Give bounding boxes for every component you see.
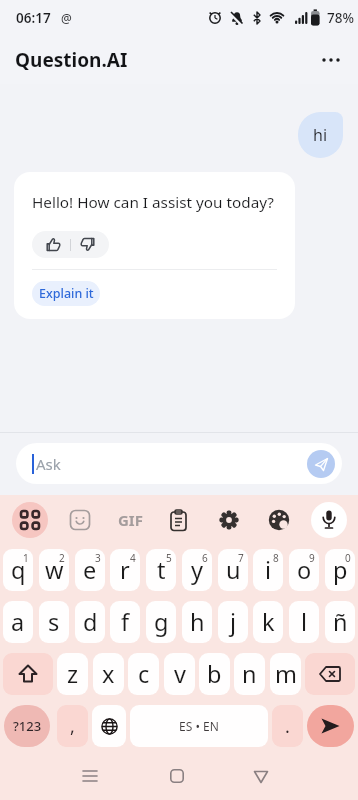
staticText: n	[242, 658, 257, 690]
staticText: Ask	[36, 454, 61, 474]
button[interactable]: q	[3, 549, 33, 591]
staticText: r	[120, 554, 130, 586]
button[interactable]: ?123	[4, 705, 50, 747]
staticText: b	[207, 658, 222, 690]
button[interactable]: c	[128, 653, 159, 695]
button[interactable]: ,	[57, 705, 88, 747]
staticText: i	[265, 554, 272, 586]
staticText: k	[262, 606, 275, 638]
button[interactable]: n	[234, 653, 265, 695]
button[interactable]: .	[272, 705, 303, 747]
button[interactable]	[92, 705, 126, 747]
staticText: Question.AI	[15, 47, 128, 73]
staticText: 7	[238, 551, 244, 565]
staticText: s	[48, 606, 60, 638]
staticText: l	[301, 606, 308, 638]
staticText: u	[226, 554, 241, 586]
staticText: ñ	[333, 606, 348, 638]
button[interactable]: w	[39, 549, 69, 591]
button[interactable]: ES • EN	[130, 705, 268, 747]
button[interactable]	[307, 705, 354, 747]
button[interactable]: g	[146, 601, 176, 643]
button[interactable]: h	[182, 601, 212, 643]
button[interactable]: ñ	[325, 601, 355, 643]
staticText: 3	[95, 551, 101, 565]
staticText: 0	[345, 551, 351, 565]
staticText: x	[102, 658, 115, 690]
staticText: GIF	[118, 510, 143, 530]
staticText: t	[157, 554, 166, 586]
button[interactable]: a	[3, 601, 33, 643]
button[interactable]: p	[325, 549, 355, 591]
staticText: g	[154, 606, 169, 638]
staticText: ES • EN	[179, 718, 219, 734]
staticText: ?123	[13, 717, 42, 735]
staticText: 4	[130, 551, 136, 565]
button[interactable]	[321, 50, 343, 70]
staticText: .	[285, 714, 290, 739]
button[interactable]	[253, 770, 269, 784]
staticText: q	[11, 554, 26, 586]
button[interactable]: u	[218, 549, 248, 591]
button[interactable]: s	[39, 601, 69, 643]
staticText: 78%	[327, 9, 354, 27]
button[interactable]	[307, 450, 335, 478]
button[interactable]: y	[182, 549, 212, 591]
staticText: h	[190, 606, 205, 638]
button[interactable]: z	[57, 653, 88, 695]
button[interactable]	[218, 509, 240, 531]
button[interactable]: hi	[298, 112, 343, 158]
button[interactable]	[305, 653, 355, 695]
staticText: m	[275, 658, 297, 690]
button[interactable]: d	[75, 601, 105, 643]
staticText: p	[333, 554, 348, 586]
staticText: v	[174, 658, 186, 690]
staticText: @	[61, 10, 72, 26]
staticText: z	[67, 658, 79, 690]
button[interactable]	[12, 502, 48, 538]
button[interactable]: Ask	[16, 443, 342, 484]
button[interactable]	[32, 231, 109, 258]
button[interactable]	[311, 502, 347, 538]
button[interactable]	[69, 509, 91, 531]
button[interactable]: k	[253, 601, 283, 643]
staticText: ,	[70, 714, 75, 739]
staticText: hi	[313, 124, 328, 146]
staticText: 8	[273, 551, 279, 565]
button[interactable]: GIF	[112, 507, 148, 533]
button[interactable]: l	[289, 601, 319, 643]
button[interactable]: i	[253, 549, 283, 591]
button[interactable]: j	[218, 601, 248, 643]
staticText: Explain it	[39, 285, 94, 302]
staticText: 9	[309, 551, 315, 565]
button[interactable]: v	[164, 653, 195, 695]
staticText: f	[121, 606, 130, 638]
button[interactable]: e	[75, 549, 105, 591]
staticText: o	[297, 554, 312, 586]
button[interactable]	[170, 769, 184, 783]
button[interactable]	[82, 769, 98, 783]
staticText: e	[83, 554, 97, 586]
staticText: y	[191, 554, 203, 586]
staticText: 1	[23, 551, 29, 565]
button[interactable]: m	[270, 653, 301, 695]
staticText: j	[230, 606, 237, 638]
button[interactable]: b	[199, 653, 230, 695]
button[interactable]: o	[289, 549, 319, 591]
button[interactable]	[3, 653, 53, 695]
staticText: 2	[59, 551, 65, 565]
staticText: a	[11, 606, 25, 638]
button[interactable]: r	[110, 549, 140, 591]
button[interactable]	[268, 509, 290, 531]
staticText: w	[45, 554, 64, 586]
staticText: 5	[166, 551, 172, 565]
button[interactable]: Explain it	[32, 281, 100, 306]
button[interactable]: f	[110, 601, 140, 643]
button[interactable]: x	[93, 653, 124, 695]
staticText: 06:17	[16, 9, 51, 27]
staticText: Hello! How can I assist you today?	[32, 192, 275, 213]
staticText: d	[83, 606, 98, 638]
button[interactable]	[169, 509, 189, 532]
button[interactable]: t	[146, 549, 176, 591]
staticText: c	[138, 658, 150, 690]
